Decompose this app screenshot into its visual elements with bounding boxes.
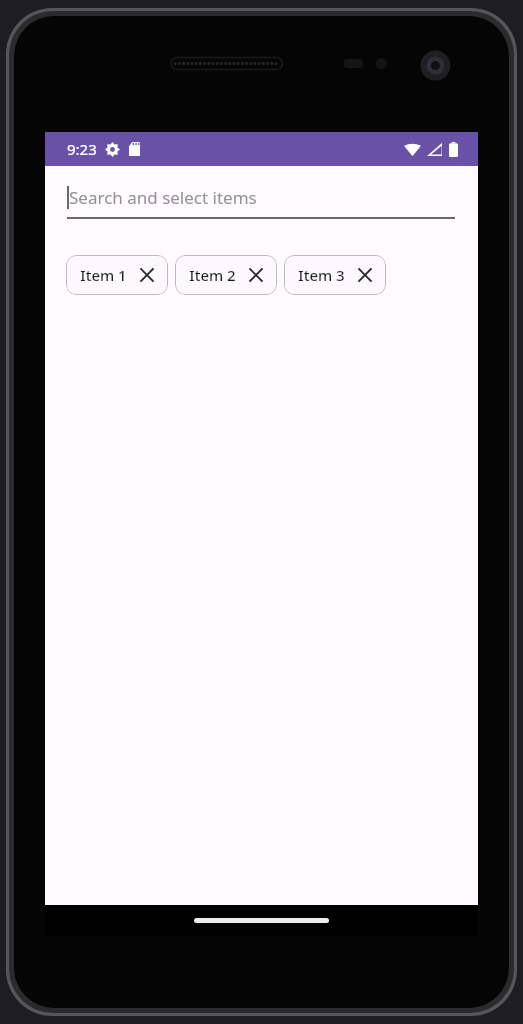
button[interactable]: Item 3 [284, 255, 386, 295]
staticText: Item 2 [189, 265, 236, 285]
button[interactable]: Remove Item 3 [356, 266, 374, 284]
button[interactable]: Item 1 [66, 255, 168, 295]
button[interactable]: Item 2 [175, 255, 277, 295]
button[interactable]: Remove Item 1 [138, 266, 156, 284]
staticText: Item 3 [298, 265, 345, 285]
staticText: Search and select items [69, 186, 257, 209]
button[interactable]: Search and select items [67, 186, 455, 219]
button[interactable]: Remove Item 2 [247, 266, 265, 284]
staticText: 9:23 [67, 139, 97, 159]
staticText: Item 1 [80, 265, 127, 285]
